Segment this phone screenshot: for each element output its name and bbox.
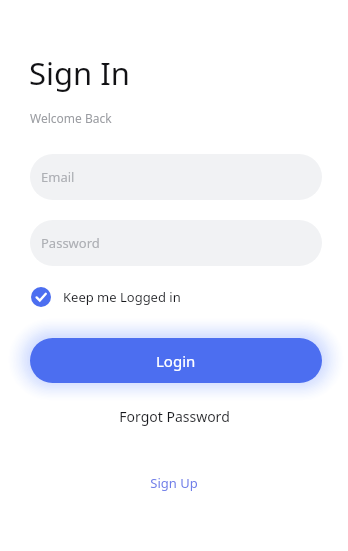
staticText: Email [41,168,75,186]
staticText: Login [156,351,196,371]
button[interactable]: Forgot Password [111,404,238,429]
staticText: Keep me Logged in [63,288,181,306]
button[interactable]: Keep me Logged in [30,285,182,309]
staticText: Welcome Back [30,110,112,126]
button[interactable]: Email [30,154,322,200]
staticText: Sign In [29,52,130,94]
staticText: Sign Up [150,474,198,492]
button[interactable]: Password [30,220,322,266]
button[interactable]: Sign Up [140,471,208,495]
staticText: Password [41,234,100,252]
button[interactable]: Login [30,338,322,383]
staticText: Forgot Password [119,407,230,426]
